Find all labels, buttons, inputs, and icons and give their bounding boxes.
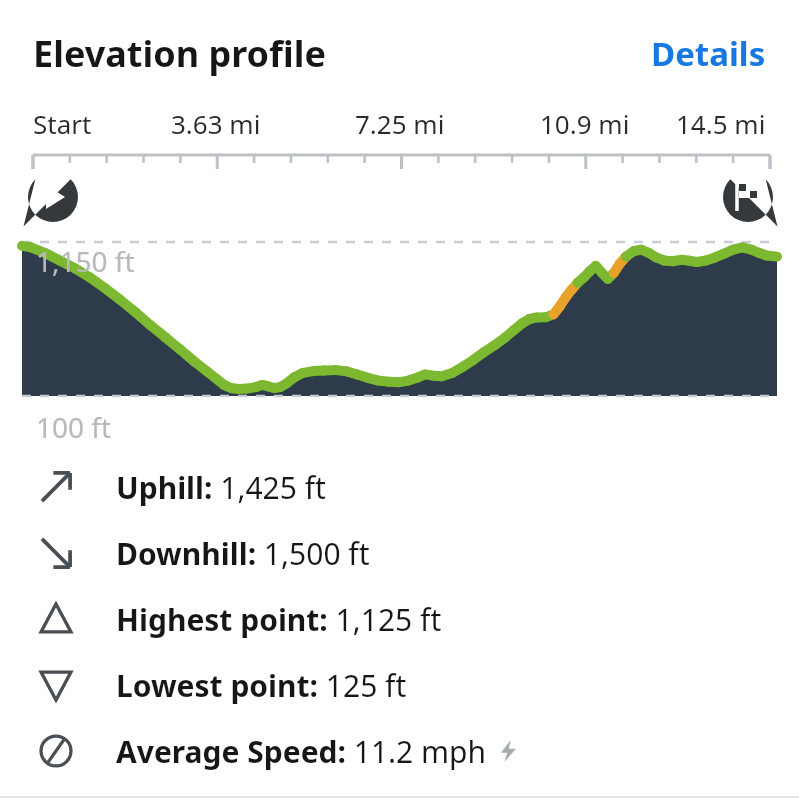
staticText: Details xyxy=(651,31,766,76)
button[interactable]: Details xyxy=(651,31,766,76)
button[interactable]: Elevation profile xyxy=(33,29,651,78)
staticText: 10.9 mi xyxy=(540,106,630,141)
staticText: Downhill: 1,500 ft xyxy=(116,533,370,574)
staticText: Average Speed: 11.2 mph xyxy=(116,731,487,772)
staticText: Start xyxy=(33,106,92,141)
staticText: Uphill: 1,425 ft xyxy=(116,467,326,508)
staticText: Elevation profile xyxy=(33,29,326,78)
button[interactable]: Uphill: 1,425 ft xyxy=(0,454,799,520)
staticText: 100 ft xyxy=(36,408,112,446)
staticText: Lowest point: 125 ft xyxy=(116,665,407,706)
staticText: Highest point: 1,125 ft xyxy=(116,599,442,640)
staticText: 3.63 mi xyxy=(171,106,261,141)
button[interactable]: Lowest point: 125 ft xyxy=(0,652,799,718)
staticText: 1,150 ft xyxy=(36,242,135,280)
button[interactable]: Downhill: 1,500 ft xyxy=(0,520,799,586)
staticText: 7.25 mi xyxy=(355,106,445,141)
button[interactable]: Average Speed: 11.2 mph xyxy=(0,718,799,784)
button[interactable]: Highest point: 1,125 ft xyxy=(0,586,799,652)
staticText: 14.5 mi xyxy=(676,106,766,141)
